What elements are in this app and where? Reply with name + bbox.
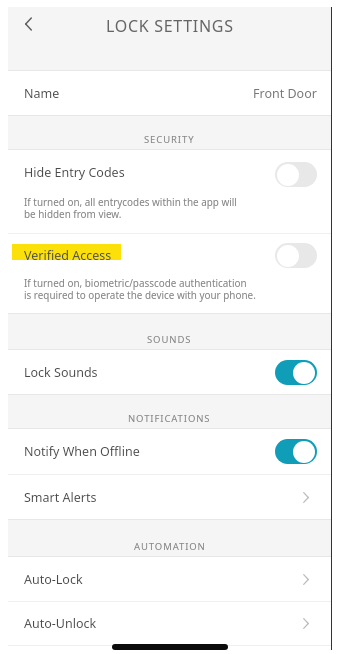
button[interactable]: Smart Alerts xyxy=(8,475,331,519)
staticText: Name xyxy=(24,85,60,102)
button[interactable]: Verified Access xyxy=(8,234,331,276)
button[interactable]: Toggle on xyxy=(275,439,317,464)
staticText: NOTIFICATIONS xyxy=(128,412,211,425)
button[interactable]: Auto-Unlock xyxy=(8,602,331,645)
button[interactable]: Auto-Lock xyxy=(8,557,331,601)
button[interactable]: Toggle off xyxy=(275,243,317,268)
staticText: Hide Entry Codes xyxy=(24,164,125,181)
staticText: SECURITY xyxy=(144,133,195,146)
staticText: Verified Access xyxy=(24,247,112,264)
staticText: AUTOMATION xyxy=(134,540,206,553)
staticText: If turned on, biometric/passcode authent… xyxy=(24,276,256,302)
staticText: Smart Alerts xyxy=(24,489,97,506)
button[interactable]: Back xyxy=(8,9,48,39)
button[interactable]: Notify When Offline xyxy=(8,429,331,474)
button[interactable]: Hide Entry Codes xyxy=(8,150,331,195)
staticText: Lock Sounds xyxy=(24,364,98,381)
button[interactable]: Lock Sounds xyxy=(8,350,331,394)
button[interactable]: Toggle on xyxy=(275,360,317,385)
staticText: Front Door xyxy=(253,85,317,102)
staticText: LOCK SETTINGS xyxy=(106,15,234,37)
button[interactable]: Name xyxy=(8,71,331,115)
staticText: SOUNDS xyxy=(147,333,192,346)
staticText: Auto-Lock xyxy=(24,571,83,588)
button[interactable]: Toggle off xyxy=(275,162,317,187)
staticText: Notify When Offline xyxy=(24,443,140,460)
staticText: If turned on, all entrycodes within the … xyxy=(24,195,237,221)
staticText: Auto-Unlock xyxy=(24,615,97,632)
